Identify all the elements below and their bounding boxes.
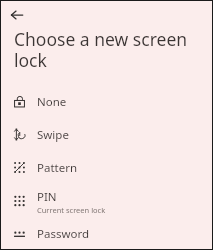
button[interactable]: None <box>1 85 212 118</box>
staticText: Pattern <box>37 160 78 176</box>
button[interactable]: Back <box>6 4 28 26</box>
staticText: None <box>37 94 67 110</box>
staticText: Choose a new screen lock <box>14 27 194 72</box>
button[interactable]: Swipe <box>1 118 212 151</box>
button[interactable]: Pattern <box>1 151 212 184</box>
button[interactable]: PIN <box>1 184 212 219</box>
staticText: Password <box>37 226 90 242</box>
staticText: Swipe <box>37 127 69 143</box>
staticText: PIN <box>37 189 57 205</box>
staticText: Current screen lock <box>37 205 106 215</box>
button[interactable]: Password <box>1 219 212 249</box>
